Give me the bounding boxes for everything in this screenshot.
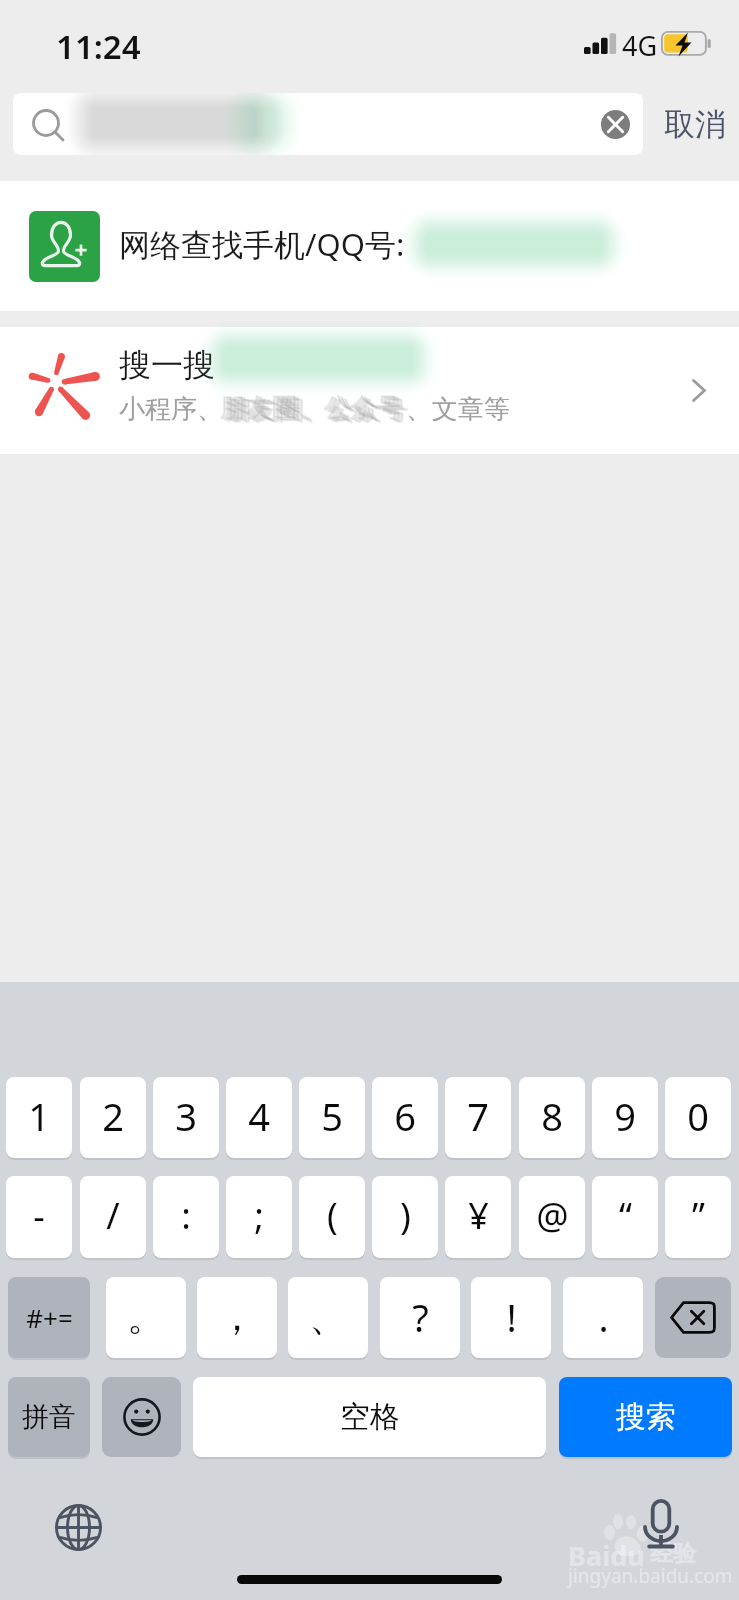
button[interactable]: ” [665, 1176, 731, 1258]
staticText: 空格 [340, 1398, 400, 1436]
button[interactable]: 空格 [193, 1377, 546, 1457]
staticText: ¥ [468, 1191, 489, 1240]
staticText: 朋友圈、公众号 [226, 394, 408, 427]
staticText: ” [692, 1191, 705, 1240]
staticText: 搜索 [616, 1398, 676, 1436]
button[interactable]: . [563, 1277, 643, 1358]
staticText: 4 [248, 1090, 270, 1142]
button[interactable]: Switch keyboard language [55, 1504, 102, 1551]
staticText: 9 [614, 1090, 636, 1142]
staticText: 8 [541, 1090, 563, 1142]
button[interactable]: Voice input [645, 1499, 677, 1551]
staticText: 0 [687, 1090, 709, 1142]
button[interactable]: ¥ [445, 1176, 511, 1258]
staticText: ， [218, 1293, 256, 1341]
staticText: ! [506, 1291, 517, 1343]
staticText: 2 [102, 1090, 124, 1142]
button[interactable]: ) [372, 1176, 438, 1258]
button[interactable]: 5 [299, 1077, 365, 1158]
button[interactable]: 2 [80, 1077, 146, 1158]
button[interactable]: ? [380, 1277, 460, 1358]
button[interactable]: Clear text [601, 110, 630, 139]
staticText: “ [619, 1191, 632, 1240]
staticText: 朋友圈、公众号 [227, 395, 409, 428]
staticText: : [181, 1191, 191, 1240]
staticText: 取消 [664, 105, 726, 144]
button[interactable]: ( [299, 1176, 365, 1258]
button[interactable]: 搜索 [559, 1377, 732, 1457]
button[interactable]: 3 [153, 1077, 219, 1158]
staticText: 11:24 [56, 24, 141, 69]
staticText: - [33, 1191, 45, 1240]
button[interactable]: 拼音 [8, 1377, 90, 1457]
button[interactable]: 、 [288, 1277, 368, 1358]
button[interactable]: / [80, 1176, 146, 1258]
staticText: 7 [467, 1090, 489, 1142]
staticText: 6 [394, 1090, 416, 1142]
staticText: 5 [321, 1090, 343, 1142]
button[interactable]: 6 [372, 1077, 438, 1158]
staticText: . [598, 1291, 609, 1343]
staticText: 朋友圈、公众号 [220, 392, 402, 425]
button[interactable]: 0 [665, 1077, 731, 1158]
button[interactable]: 9 [592, 1077, 658, 1158]
button[interactable]: 搜一搜 [0, 327, 739, 454]
staticText: 网络查找手机/QQ号: [119, 223, 405, 265]
staticText: @ [536, 1191, 569, 1240]
staticText: 搜一搜 [119, 345, 215, 385]
staticText: 。 [127, 1293, 165, 1341]
staticText: 拼音 [22, 1400, 76, 1434]
staticText: 经验 [650, 1539, 696, 1568]
button[interactable]: 4 [226, 1077, 292, 1158]
button[interactable]: : [153, 1176, 219, 1258]
button[interactable]: @ [519, 1176, 585, 1258]
staticText: 4G [622, 27, 658, 64]
button[interactable]: 网络查找手机/QQ号: [0, 181, 739, 311]
staticText: 3 [175, 1090, 197, 1142]
button[interactable]: ， [197, 1277, 277, 1358]
staticText: Baidu [568, 1537, 645, 1574]
staticText: ? [412, 1291, 429, 1343]
staticText: 1 [28, 1090, 50, 1142]
staticText: / [106, 1191, 120, 1240]
button[interactable]: #+= [8, 1277, 90, 1358]
button[interactable]: - [6, 1176, 72, 1258]
button[interactable]: Emoji keyboard [102, 1377, 181, 1457]
button[interactable]: 8 [519, 1077, 585, 1158]
button[interactable] [13, 93, 643, 155]
staticText: #+= [26, 1300, 73, 1335]
staticText: ( [327, 1191, 338, 1240]
button[interactable]: ; [226, 1176, 292, 1258]
button[interactable]: ! [471, 1277, 551, 1358]
staticText: 、 [309, 1293, 347, 1341]
staticText: 小程序、 [119, 393, 223, 426]
button[interactable]: 7 [445, 1077, 511, 1158]
staticText: 朋友圈、公众号 [222, 392, 404, 425]
staticText: ) [400, 1191, 411, 1240]
button[interactable]: Backspace [655, 1277, 731, 1358]
button[interactable]: “ [592, 1176, 658, 1258]
button[interactable]: 。 [106, 1277, 186, 1358]
staticText: 朋友圈、公众号 [223, 393, 405, 426]
staticText: jingyan.baidu.com [568, 1563, 733, 1589]
button[interactable]: 1 [6, 1077, 72, 1158]
staticText: 朋友圈、公众号 [224, 394, 406, 427]
button[interactable]: 取消 [655, 93, 735, 155]
staticText: 朋友圈、公众号 [219, 391, 401, 424]
staticText: 、文章等 [406, 393, 510, 426]
staticText: ; [254, 1191, 264, 1240]
